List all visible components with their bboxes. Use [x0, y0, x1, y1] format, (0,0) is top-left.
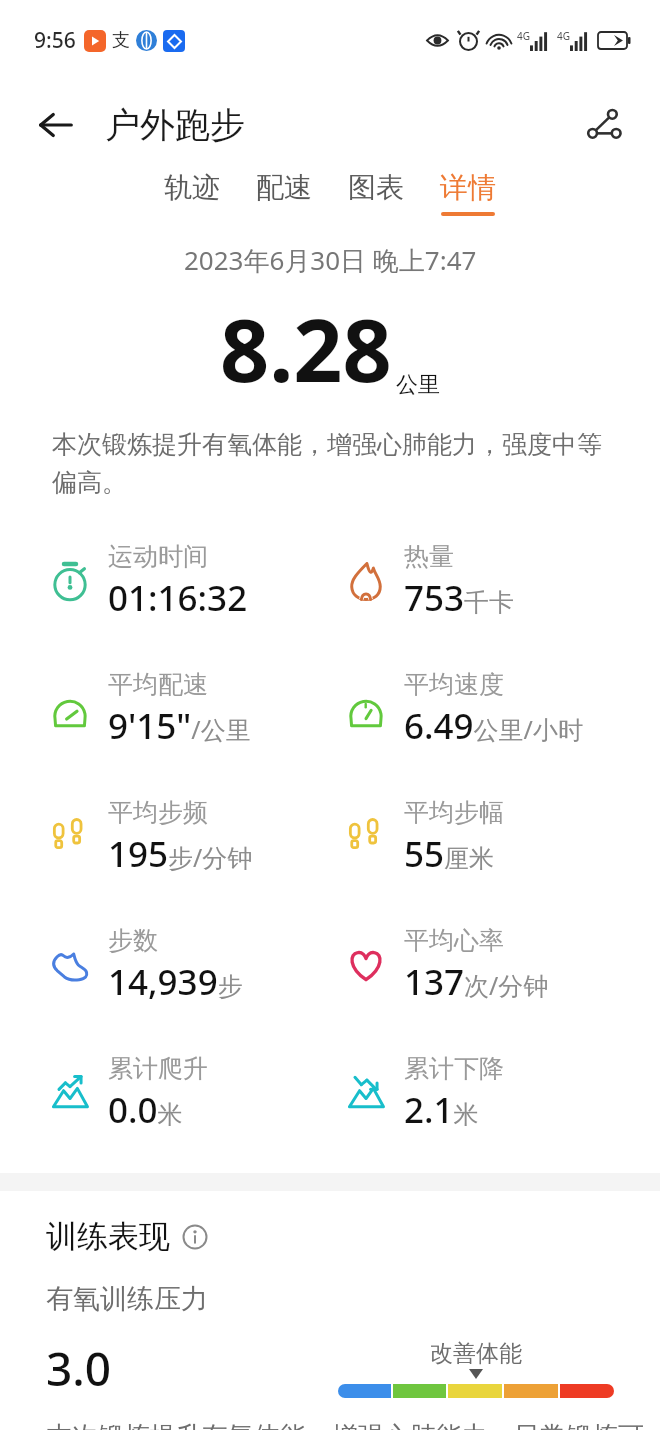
staticText: 训练表现: [46, 1217, 170, 1256]
staticText: 137次/分钟: [404, 958, 549, 1006]
button[interactable]: 配速: [252, 170, 316, 216]
staticText: 户外跑步: [105, 103, 245, 147]
staticText: 配速: [256, 170, 312, 205]
staticText: 01:16:32: [108, 574, 248, 622]
button[interactable]: 图表: [344, 170, 408, 216]
staticText: 本次锻炼提升有氧体能，增强心肺能力，日常锻炼可以出现: [46, 1420, 660, 1430]
staticText: 平均步频: [108, 797, 208, 828]
staticText: 6.49公里/小时: [404, 702, 583, 750]
button[interactable]: 轨迹: [160, 170, 224, 216]
staticText: 55厘米: [404, 830, 495, 878]
staticText: 本次锻炼提升有氧体能，增强心肺能力，强度中等偏高。: [52, 429, 608, 499]
staticText: 图表: [348, 170, 404, 205]
staticText: 3.0: [46, 1337, 112, 1400]
button[interactable]: 运动时间: [0, 517, 330, 645]
staticText: 步数: [108, 925, 158, 956]
staticText: 详情: [440, 170, 496, 205]
staticText: 平均心率: [404, 925, 504, 956]
button[interactable]: 步数: [0, 901, 330, 1029]
button[interactable]: 累计爬升: [0, 1029, 330, 1157]
staticText: 4G: [517, 29, 530, 43]
staticText: 热量: [404, 541, 454, 572]
staticText: 累计爬升: [108, 1053, 208, 1084]
staticText: 14,939步: [108, 958, 243, 1006]
staticText: 2.1米: [404, 1086, 479, 1134]
staticText: 平均速度: [404, 669, 504, 700]
staticText: 有氧训练压力: [46, 1282, 208, 1316]
staticText: 平均配速: [108, 669, 208, 700]
staticText: 运动时间: [108, 541, 208, 572]
button[interactable]: 平均步幅: [330, 773, 660, 901]
staticText: 9:56: [34, 26, 76, 55]
staticText: 平均步幅: [404, 797, 504, 828]
button[interactable]: 热量: [330, 517, 660, 645]
button[interactable]: Back: [30, 99, 82, 151]
staticText: 公里: [396, 371, 440, 399]
button[interactable]: 平均配速: [0, 645, 330, 773]
staticText: 9'15"/公里: [108, 702, 251, 750]
button[interactable]: 平均心率: [330, 901, 660, 1029]
staticText: 195步/分钟: [108, 830, 253, 878]
staticText: 0.0米: [108, 1086, 183, 1134]
staticText: 轨迹: [164, 170, 220, 205]
button[interactable]: 平均步频: [0, 773, 330, 901]
staticText: 累计下降: [404, 1053, 504, 1084]
button[interactable]: Share: [576, 97, 632, 153]
staticText: 支: [112, 29, 130, 52]
staticText: 753千卡: [404, 574, 515, 622]
staticText: 4G: [557, 29, 570, 43]
button[interactable]: 详情: [436, 170, 500, 216]
staticText: 8.28: [220, 290, 392, 407]
button[interactable]: 累计下降: [330, 1029, 660, 1157]
button[interactable]: 平均速度: [330, 645, 660, 773]
staticText: 2023年6月30日 晚上7:47: [184, 242, 477, 278]
staticText: 改善体能: [337, 1339, 615, 1368]
button[interactable]: 训练表现: [46, 1217, 208, 1256]
